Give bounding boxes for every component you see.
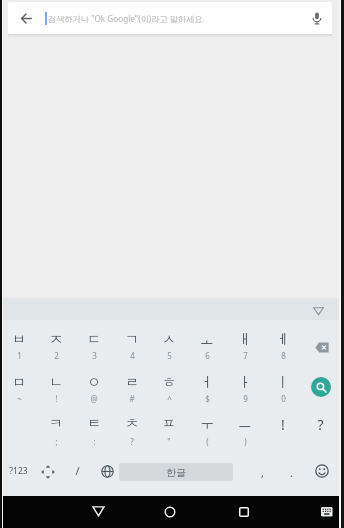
button[interactable]: ! [267,413,299,435]
staticText: ㄱ [125,331,139,349]
button[interactable]: ) [229,430,261,452]
button[interactable]: 검색하거나 "Ok Google"(이)라고 말하세요. [8,2,332,34]
staticText: ㅈ [49,331,63,349]
staticText: @ [90,393,98,404]
button[interactable]: ㅓ [191,372,223,394]
button[interactable]: ㅔ [267,329,299,351]
staticText: ?123 [9,465,28,477]
button[interactable]: ~ [3,387,35,409]
button[interactable] [41,465,55,479]
button[interactable]: ㅁ [3,372,35,394]
button[interactable]: 6 [191,344,223,366]
staticText: ! [55,393,58,404]
staticText: / [75,463,80,478]
staticText: ? [130,436,134,447]
button[interactable]: ㅈ [40,329,72,351]
staticText: : [93,436,96,447]
button[interactable] [21,13,32,24]
staticText: ! [281,415,285,434]
staticText: ) [244,436,247,447]
button[interactable]: @ [78,387,110,409]
button[interactable] [164,506,176,518]
button[interactable]: ㄷ [78,329,110,351]
button[interactable]: 4 [116,344,148,366]
staticText: ㅍ [162,415,176,433]
button[interactable]: ; [40,430,72,452]
staticText: ㅇ [87,374,101,392]
button[interactable] [239,507,249,517]
staticText: ㅔ [276,331,290,349]
button[interactable]: , [246,461,278,483]
button[interactable]: ㅅ [153,329,185,351]
button[interactable]: 5 [153,344,185,366]
staticText: ㅓ [200,374,214,392]
button[interactable]: ㅜ [191,413,223,435]
button[interactable] [92,506,105,517]
button[interactable]: ㅏ [229,372,261,394]
button[interactable]: / [61,459,93,481]
button[interactable]: ㅗ [191,329,223,351]
button[interactable] [311,377,331,397]
staticText: 5 [167,350,172,361]
button[interactable]: 한글 [119,463,233,481]
button[interactable]: ㅌ [78,413,110,435]
staticText: ㅜ [200,415,214,433]
staticText: 한글 [166,466,186,479]
staticText: 7 [243,350,248,361]
staticText: . [290,465,293,480]
button[interactable] [313,307,324,316]
button[interactable]: 1 [3,344,35,366]
staticText: # [129,393,135,404]
button[interactable]: ㅡ [229,413,261,435]
button[interactable]: : [78,430,110,452]
staticText: ㅂ [12,331,26,349]
button[interactable]: 8 [267,344,299,366]
button[interactable]: 0 [267,387,299,409]
button[interactable]: ㅍ [153,413,185,435]
button[interactable]: ? [304,413,336,435]
button[interactable]: ㄹ [116,372,148,394]
button[interactable]: ㅎ [153,372,185,394]
button[interactable] [311,12,323,25]
button[interactable]: # [116,387,148,409]
button[interactable]: ! [40,387,72,409]
button[interactable]: ㅐ [229,329,261,351]
button[interactable]: ^ [153,387,185,409]
button[interactable]: 2 [40,344,72,366]
button[interactable] [101,465,114,478]
button[interactable] [315,342,330,353]
staticText: ㅡ [238,415,252,433]
staticText: ( [206,436,209,447]
staticText: , [261,465,264,480]
button[interactable]: ?123 [2,460,34,482]
button[interactable]: $ [191,387,223,409]
staticText: 2 [54,350,59,361]
button[interactable]: " [153,430,185,452]
button[interactable]: ㄴ [40,372,72,394]
button[interactable]: ㅣ [267,372,299,394]
staticText: ㄷ [87,331,101,349]
staticText: 검색하거나 "Ok Google"(이)라고 말하세요. [48,13,205,24]
staticText: ㅅ [162,331,176,349]
button[interactable] [321,507,333,517]
button[interactable]: ( [191,430,223,452]
staticText: ㅎ [162,374,176,392]
staticText: ㅣ [276,374,290,392]
staticText: ㅁ [12,374,26,392]
button[interactable]: ㅊ [116,413,148,435]
button[interactable]: ㄱ [116,329,148,351]
staticText: ~ [17,393,22,404]
button[interactable]: ㅋ [40,413,72,435]
button[interactable]: . [275,461,307,483]
staticText: 8 [281,350,286,361]
button[interactable]: ㅂ [3,329,35,351]
button[interactable]: 7 [229,344,261,366]
button[interactable]: 9 [229,387,261,409]
button[interactable]: ㅇ [78,372,110,394]
button[interactable] [315,464,329,478]
staticText: $ [205,393,210,404]
staticText: 9 [243,393,248,404]
button[interactable]: ? [116,430,148,452]
staticText: ? [317,415,324,434]
button[interactable]: 3 [78,344,110,366]
